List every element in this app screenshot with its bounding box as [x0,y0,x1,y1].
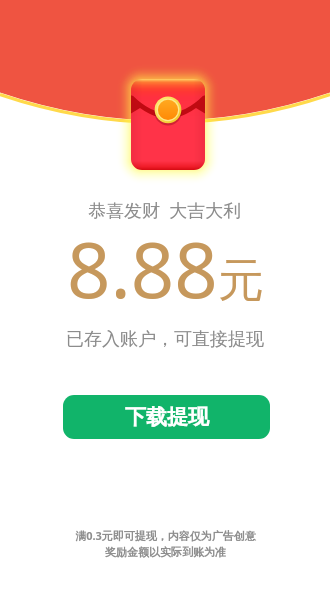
staticText: 满0.3元即可提现，内容仅为广告创意 奖励金额以实际到账为准 [75,528,256,559]
staticText: 已存入账户，可直接提现 [66,328,264,351]
staticText: 下载提现 [125,404,209,430]
staticText: 恭喜发财 大吉大利 [88,198,242,223]
staticText: 8.88 [67,217,218,321]
staticText: 元 [218,252,264,310]
button[interactable]: 下载提现 [63,395,270,439]
